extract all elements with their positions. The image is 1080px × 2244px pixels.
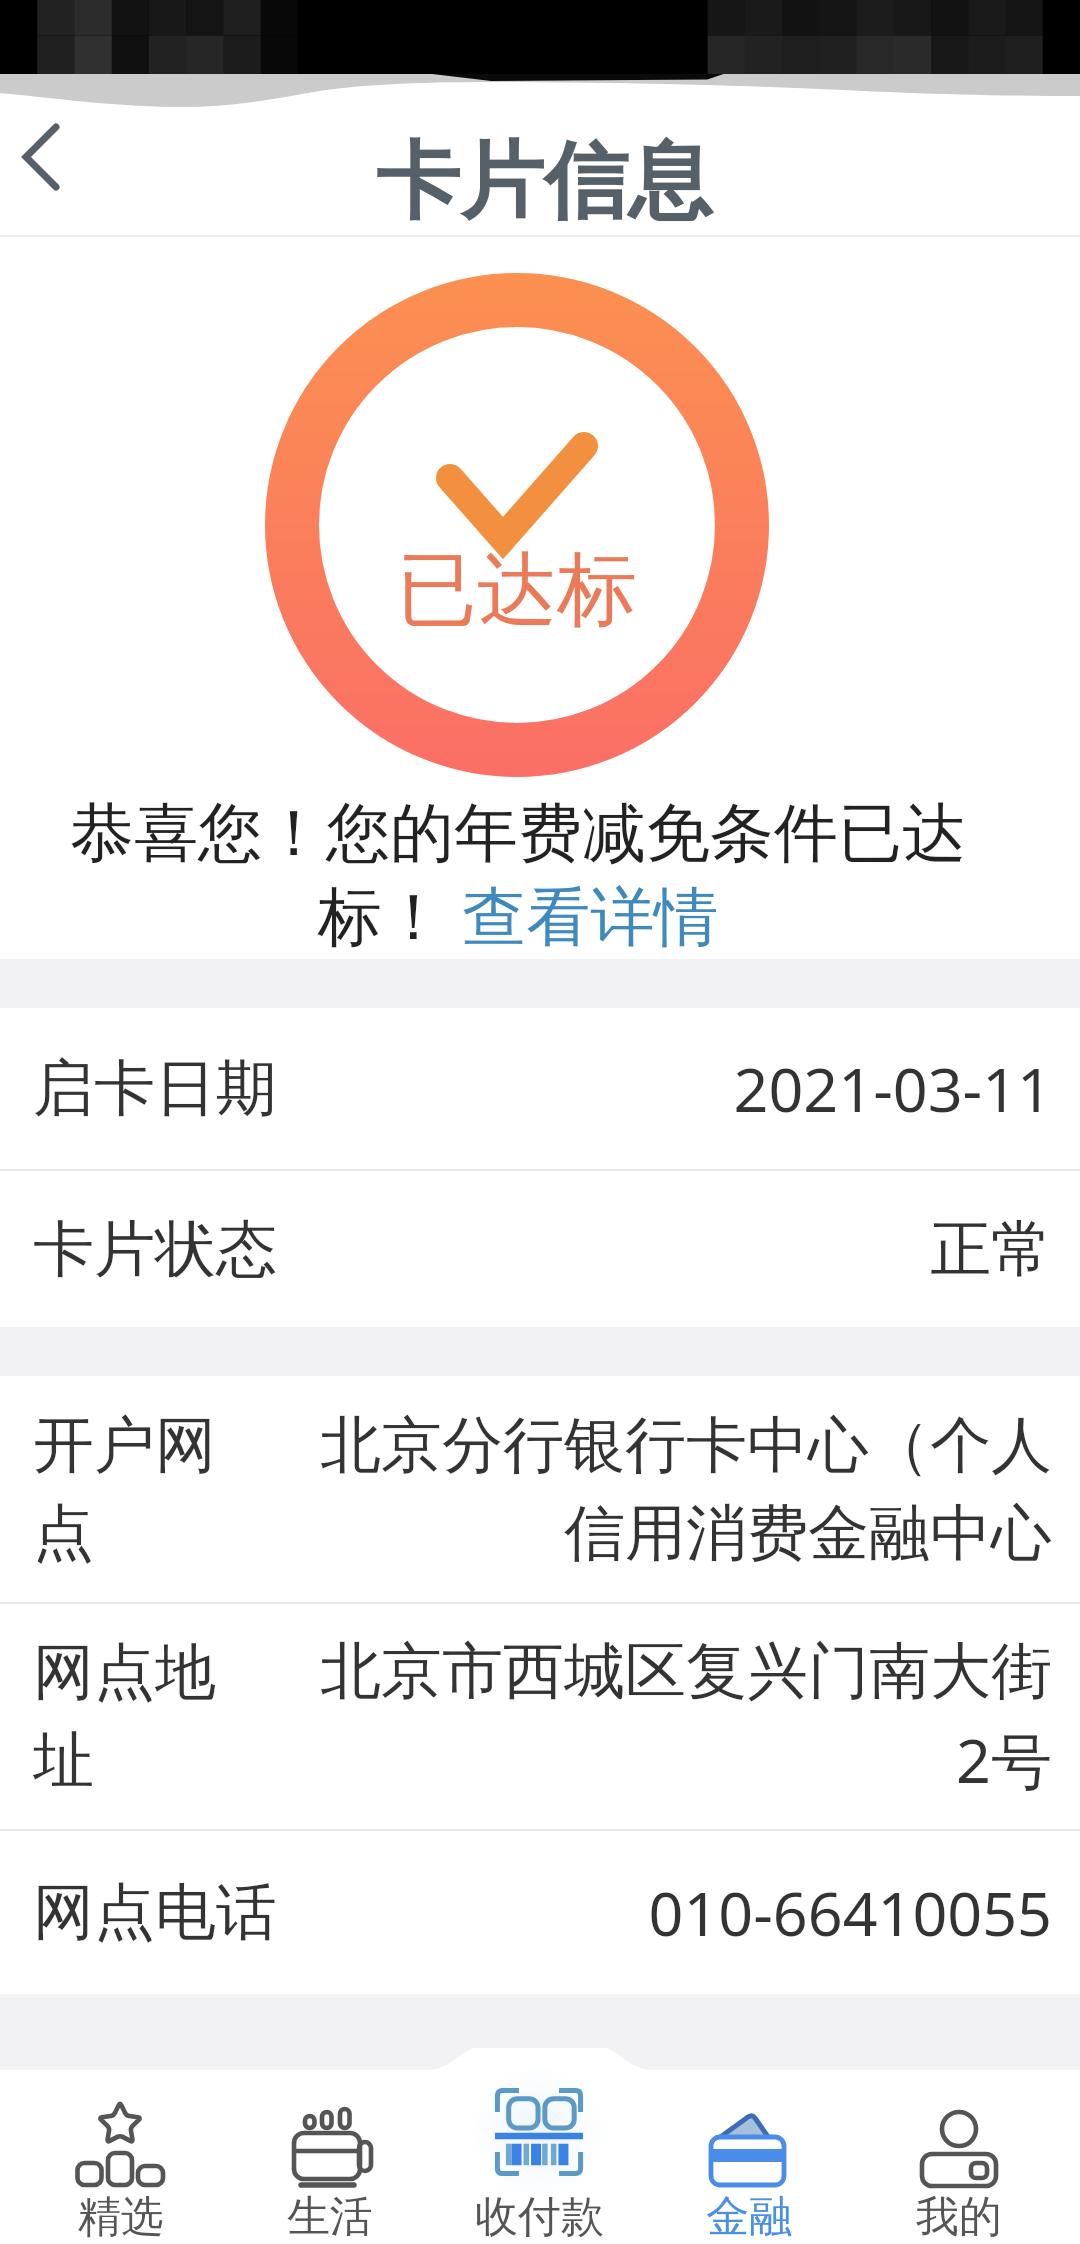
button[interactable]: 生活 bbox=[225, 2070, 434, 2244]
button[interactable]: 收付款 bbox=[434, 2070, 644, 2244]
staticText: 金融 bbox=[706, 2190, 792, 2244]
staticText: 2021-03-11 bbox=[293, 1047, 1052, 1130]
button[interactable]: 网点地址 bbox=[0, 1604, 1080, 1829]
staticText: 010-66410055 bbox=[293, 1871, 1052, 1954]
button[interactable]: 金融 bbox=[644, 2070, 854, 2244]
staticText: 卡片信息 bbox=[376, 129, 712, 235]
staticText: 北京分行银行卡中心（个人信用消费金融中心 bbox=[275, 1407, 1052, 1572]
staticText: 生活 bbox=[287, 2190, 373, 2244]
staticText: 北京市西城区复兴门南大街2号 bbox=[297, 1633, 1052, 1801]
button[interactable]: 卡片状态 bbox=[0, 1171, 1080, 1327]
staticText: 卡片状态 bbox=[33, 1211, 293, 1288]
staticText: 精选 bbox=[78, 2190, 164, 2244]
button[interactable]: 网点电话 bbox=[0, 1831, 1080, 1994]
button[interactable]: 精选 bbox=[16, 2070, 225, 2244]
staticText: 网点电话 bbox=[33, 1874, 293, 1951]
staticText: 启卡日期 bbox=[33, 1050, 293, 1127]
button[interactable]: 启卡日期 bbox=[0, 1008, 1080, 1169]
staticText: 收付款 bbox=[475, 2190, 604, 2244]
staticText: 恭喜您！您的年费减免条件已达标！ 查看详情 bbox=[40, 793, 996, 958]
staticText: 开户网点 bbox=[33, 1407, 275, 1572]
staticText: 正常 bbox=[293, 1211, 1052, 1288]
button[interactable]: 开户网点 bbox=[0, 1376, 1080, 1602]
staticText: 我的 bbox=[916, 2190, 1002, 2244]
button[interactable]: Back bbox=[0, 99, 110, 209]
staticText: 已达标 bbox=[397, 540, 637, 641]
button[interactable]: 我的 bbox=[854, 2070, 1064, 2244]
staticText: 网点地址 bbox=[33, 1634, 275, 1799]
